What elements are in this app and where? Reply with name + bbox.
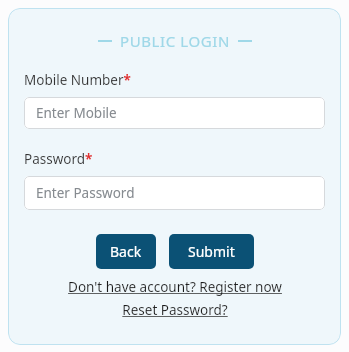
staticText: Submit <box>188 242 235 261</box>
staticText: Back <box>110 242 142 261</box>
button[interactable]: Reset Password? <box>8 301 341 319</box>
staticText: Enter Password <box>36 184 135 202</box>
staticText: Password* <box>24 150 93 168</box>
staticText: PUBLIC LOGIN <box>120 31 230 51</box>
button[interactable]: Enter Password <box>24 176 325 210</box>
staticText: Mobile Number* <box>24 71 131 89</box>
staticText: Don't have account? Register now <box>68 278 282 296</box>
button[interactable]: Submit <box>169 234 254 269</box>
staticText: Reset Password? <box>122 301 228 319</box>
staticText: Enter Mobile <box>36 104 117 122</box>
button[interactable]: Don't have account? Register now <box>8 278 341 296</box>
button[interactable]: Enter Mobile <box>24 97 325 129</box>
button[interactable]: Back <box>96 234 156 269</box>
